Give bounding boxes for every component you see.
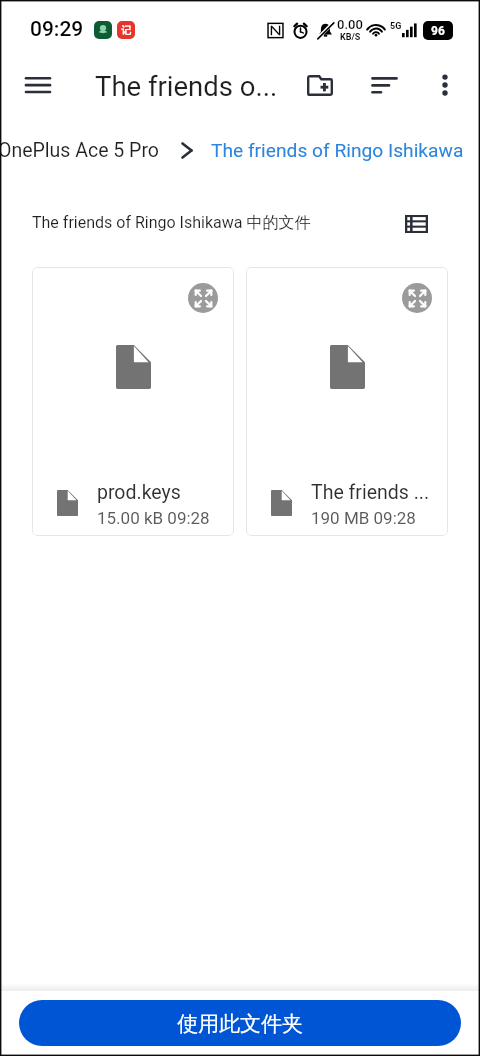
button[interactable]: Expand (32, 267, 234, 536)
button[interactable]: More options (421, 61, 469, 109)
button[interactable]: Menu (13, 61, 63, 109)
staticText: prod.keys (97, 481, 181, 504)
button[interactable]: Expand (402, 283, 432, 313)
staticText: 使用此文件夹 (177, 1011, 303, 1037)
staticText: 0.00 (337, 17, 363, 32)
staticText: 15.00 kB 09:28 (97, 508, 210, 528)
staticText: The friends ... (311, 481, 430, 504)
staticText: KB/S (340, 32, 361, 43)
button[interactable]: Expand (188, 283, 218, 313)
button[interactable]: 使用此文件夹 (19, 1000, 461, 1046)
button[interactable]: Sort (360, 61, 408, 109)
staticText: 记 (121, 24, 131, 37)
button[interactable]: The friends of Ringo Ishikawa (211, 139, 464, 162)
button[interactable]: Expand (246, 267, 448, 536)
button[interactable]: List view (395, 203, 437, 245)
staticText: 96 (431, 24, 445, 38)
button[interactable]: OnePlus Ace 5 Pro (0, 139, 159, 162)
button[interactable]: New folder (296, 61, 344, 109)
staticText: 5G (390, 21, 402, 32)
staticText: The friends o... (95, 70, 278, 102)
staticText: The friends of Ringo Ishikawa 中的文件 (32, 213, 311, 233)
staticText: 09:29 (30, 17, 84, 42)
staticText: 190 MB 09:28 (311, 508, 416, 528)
